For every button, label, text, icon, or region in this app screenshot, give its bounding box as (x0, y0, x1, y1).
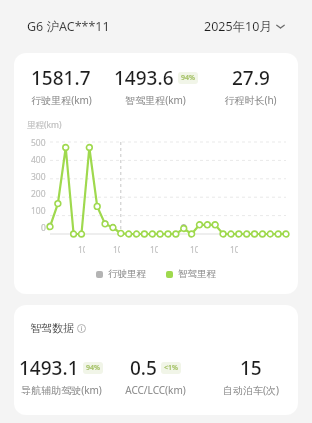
staticText: 1493.6 (114, 65, 174, 91)
other: Select month (276, 22, 285, 31)
staticText: 行驶里程(km) (31, 93, 92, 107)
staticText: 10/20 (190, 244, 198, 256)
button[interactable]: 1493.6 (108, 65, 203, 107)
staticText: ACC/LCC(km) (125, 383, 186, 397)
button[interactable]: 智驾里程 (166, 268, 216, 280)
staticText: 10/10 (113, 244, 120, 256)
staticText: 行程时长(h) (224, 93, 277, 107)
staticText: 10/25 (230, 244, 238, 256)
button[interactable]: 1493.1 (14, 355, 108, 397)
staticText: 300 (31, 171, 46, 183)
button[interactable]: 智驾数据 (30, 321, 86, 335)
staticText: 27.9 (232, 65, 270, 91)
staticText: 智驾数据 (30, 321, 74, 335)
staticText: 行驶里程 (108, 268, 146, 280)
staticText: 导航辅助驾驶(km) (21, 383, 102, 397)
staticText: <1% (164, 363, 178, 373)
staticText: 里程(km) (27, 119, 62, 131)
staticText: 10/15 (150, 244, 158, 256)
button[interactable]: 0.5 (108, 355, 203, 397)
staticText: 2025年10月 (204, 18, 272, 35)
staticText: G6 沪AC***11 (27, 18, 110, 35)
staticText: 0 (41, 222, 46, 234)
button[interactable]: 15 (203, 355, 298, 397)
staticText: 400 (31, 154, 46, 166)
staticText: 500 (31, 137, 46, 149)
button[interactable]: 27.9 (203, 65, 298, 107)
staticText: 智驾里程 (178, 268, 216, 280)
staticText: 100 (31, 205, 46, 217)
staticText: 15 (240, 355, 262, 381)
button[interactable]: 行驶里程 (96, 268, 146, 280)
staticText: 94% (86, 363, 100, 373)
staticText: 自动泊车(次) (223, 383, 279, 397)
staticText: 0.5 (130, 355, 157, 381)
staticText: 200 (31, 188, 46, 200)
staticText: 10/05 (78, 244, 85, 256)
button[interactable]: 1581.7 (14, 53, 298, 294)
staticText: 1493.1 (19, 355, 79, 381)
button[interactable]: 1581.7 (14, 65, 108, 107)
staticText: 智驾里程(km) (125, 93, 186, 107)
staticText: 94% (181, 73, 195, 83)
other: Info (77, 324, 86, 333)
button[interactable]: 智驾数据 (14, 305, 298, 415)
button[interactable]: 2025年10月 (204, 18, 285, 35)
staticText: 1581.7 (31, 65, 91, 91)
